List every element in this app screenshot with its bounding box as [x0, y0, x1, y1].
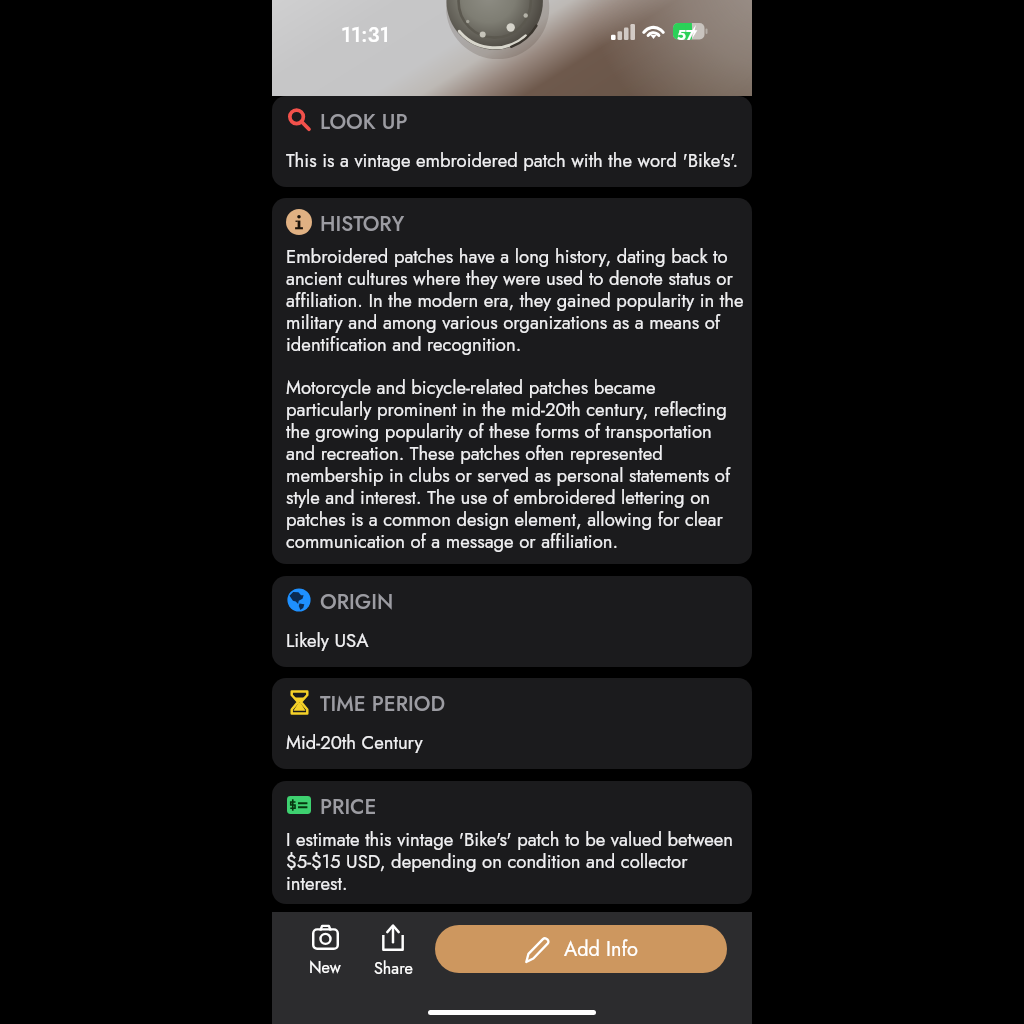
- staticText: Motorcycle and bicycle-related patches b…: [286, 377, 745, 553]
- button[interactable]: LOOK UP: [272, 96, 752, 187]
- staticText: 57: [677, 24, 695, 45]
- staticText: TIME PERIOD: [320, 689, 446, 715]
- button[interactable]: HISTORY: [272, 198, 752, 564]
- staticText: New: [309, 956, 341, 979]
- button[interactable]: Share: [360, 924, 426, 980]
- button[interactable]: New photo: [292, 924, 358, 979]
- staticText: I estimate this vintage 'Bike's' patch t…: [286, 829, 745, 895]
- staticText: HISTORY: [320, 209, 405, 235]
- button[interactable]: PRICE: [272, 781, 752, 904]
- button[interactable]: TIME PERIOD: [272, 678, 752, 769]
- staticText: ORIGIN: [320, 587, 394, 613]
- staticText: 11:31: [341, 20, 390, 50]
- button[interactable]: Add Info: [435, 925, 727, 973]
- staticText: This is a vintage embroidered patch with…: [286, 150, 745, 172]
- staticText: Mid-20th Century: [286, 732, 745, 754]
- other: Share: [382, 924, 404, 951]
- staticText: Share: [374, 957, 413, 980]
- button[interactable]: ORIGIN: [272, 576, 752, 667]
- staticText: PRICE: [320, 792, 377, 818]
- other: New photo: [312, 924, 339, 949]
- staticText: Likely USA: [286, 630, 745, 652]
- staticText: LOOK UP: [320, 107, 408, 133]
- staticText: Add Info: [564, 935, 639, 964]
- staticText: Embroidered patches have a long history,…: [286, 246, 745, 356]
